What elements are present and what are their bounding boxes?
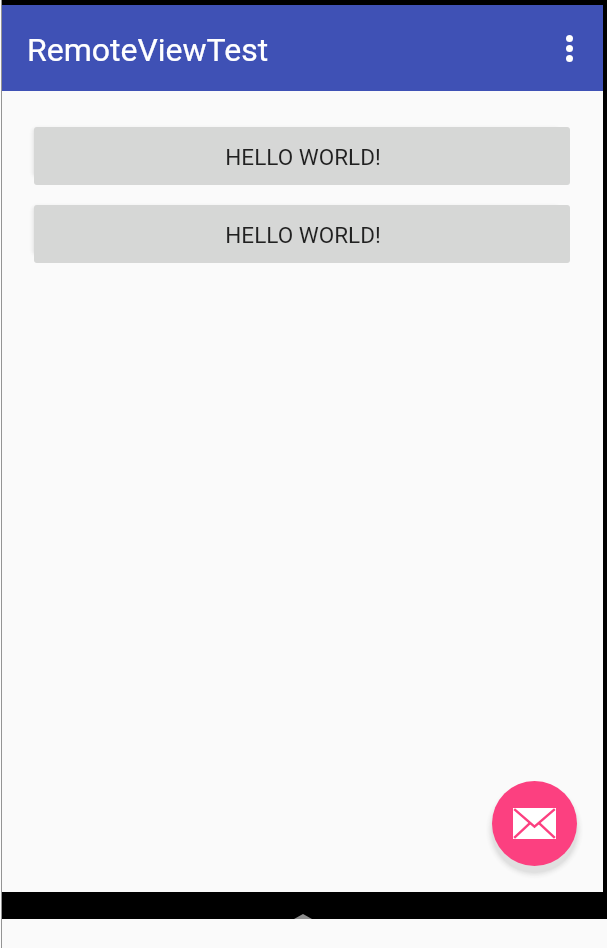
button[interactable]: HELLO WORLD!: [34, 205, 570, 263]
button[interactable]: Compose email: [492, 781, 577, 866]
button[interactable]: HELLO WORLD!: [34, 127, 570, 185]
button[interactable]: More options: [545, 24, 593, 72]
staticText: RemoteViewTest: [27, 31, 269, 69]
staticText: HELLO WORLD!: [225, 144, 381, 170]
staticText: HELLO WORLD!: [225, 222, 381, 248]
